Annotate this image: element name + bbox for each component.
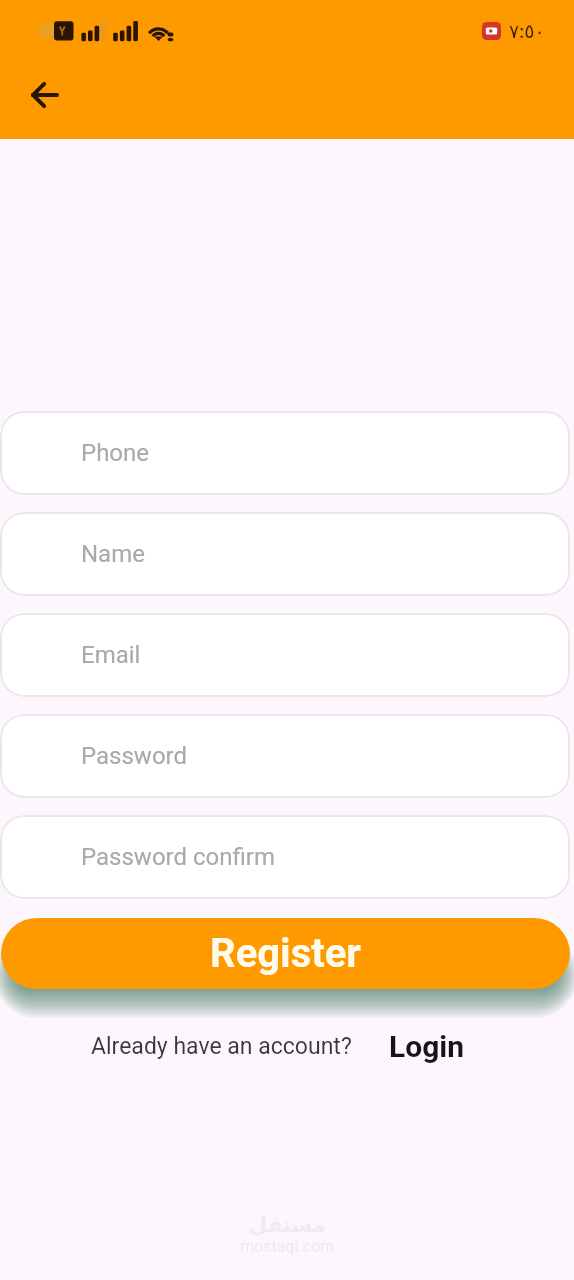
staticText: Password (81, 742, 188, 770)
button[interactable]: Back (21, 71, 69, 119)
button[interactable]: Email (0, 613, 570, 697)
button[interactable]: Password (0, 714, 570, 798)
button[interactable]: Login (389, 1029, 465, 1064)
staticText: Name (81, 540, 145, 568)
staticText: Already have an account? (91, 1033, 352, 1060)
staticText: مستقل (249, 1213, 326, 1237)
button[interactable]: Register (1, 918, 570, 989)
staticText: Email (81, 641, 141, 669)
staticText: mostaql.com (240, 1237, 335, 1256)
button[interactable]: Password confirm (0, 815, 570, 899)
staticText: Login (389, 1029, 465, 1064)
staticText: Password confirm (81, 843, 275, 871)
button[interactable]: Name (0, 512, 570, 596)
staticText: ٧:٥٠ (509, 20, 545, 42)
staticText: Phone (81, 439, 150, 467)
staticText: Register (210, 930, 361, 977)
button[interactable]: Phone (0, 411, 570, 495)
